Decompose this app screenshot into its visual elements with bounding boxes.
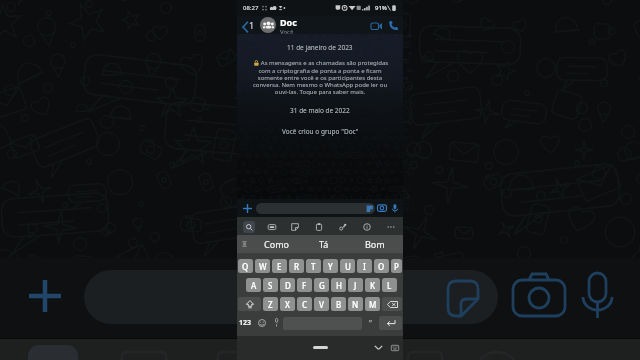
button[interactable]: Expand suggestions xyxy=(237,235,252,253)
staticText: Y xyxy=(328,261,333,272)
button[interactable]: S xyxy=(263,278,278,292)
button[interactable]: Voice message xyxy=(389,202,401,214)
staticText: 91% xyxy=(375,4,387,12)
button[interactable]: ” xyxy=(362,316,378,330)
button[interactable]: M xyxy=(365,297,380,311)
button[interactable]: Enter xyxy=(379,316,402,330)
staticText: Q xyxy=(242,261,249,272)
button[interactable]: Z xyxy=(263,297,278,311)
button[interactable]: B xyxy=(331,297,346,311)
button[interactable]: C xyxy=(297,297,312,311)
staticText: T xyxy=(311,261,316,272)
button[interactable]: X xyxy=(280,297,295,311)
button[interactable]: Backspace xyxy=(382,297,402,311)
button[interactable]: A xyxy=(246,278,261,292)
staticText: P xyxy=(394,261,399,272)
staticText: Bom xyxy=(365,238,385,250)
button[interactable]: Shift xyxy=(238,297,261,311)
staticText: 1 xyxy=(249,19,255,31)
staticText: C xyxy=(302,299,308,310)
staticText: Z xyxy=(268,299,273,310)
button[interactable]: D xyxy=(280,278,295,292)
button[interactable]: K xyxy=(365,278,380,292)
button[interactable]: Tá xyxy=(300,235,347,253)
button[interactable]: As mensagens e as chamadas são protegida… xyxy=(247,59,393,96)
button[interactable]: Back xyxy=(237,19,257,31)
staticText: E xyxy=(277,261,282,272)
staticText: Você xyxy=(280,28,294,34)
staticText: I xyxy=(363,261,366,272)
button[interactable]: G xyxy=(314,278,329,292)
button[interactable]: Tool 0 xyxy=(237,219,260,235)
button[interactable]: U xyxy=(340,259,355,273)
staticText: V xyxy=(319,299,324,310)
button[interactable]: E xyxy=(272,259,287,273)
staticText: F xyxy=(302,280,307,291)
staticText: W xyxy=(259,261,267,272)
staticText: ” xyxy=(369,318,372,329)
staticText: 11 de janeiro de 2023 xyxy=(287,43,353,52)
staticText: K xyxy=(370,280,376,291)
staticText: Como xyxy=(264,238,289,250)
button[interactable]: H xyxy=(331,278,346,292)
button[interactable]: F xyxy=(297,278,312,292)
button[interactable]: W xyxy=(255,259,270,273)
button[interactable]: O xyxy=(374,259,389,273)
staticText: A xyxy=(251,280,257,291)
button[interactable]: Tool 5 xyxy=(355,219,379,235)
staticText: D xyxy=(285,280,291,291)
button[interactable]: Emoji xyxy=(254,316,269,330)
staticText: R xyxy=(294,261,300,272)
staticText: 31 de maio de 2022 xyxy=(290,106,350,115)
staticText: Tá xyxy=(319,238,329,250)
staticText: H xyxy=(336,280,342,291)
button[interactable]: V xyxy=(314,297,329,311)
staticText: M xyxy=(369,299,377,310)
button[interactable]: Tool 3 xyxy=(307,219,331,235)
button[interactable]: Video call xyxy=(368,17,385,34)
button[interactable]: T xyxy=(306,259,321,273)
staticText: U xyxy=(345,261,351,272)
button[interactable]: Keyboard settings xyxy=(387,340,403,356)
button[interactable]: Tool 6 xyxy=(379,219,403,235)
button[interactable]: R xyxy=(289,259,304,273)
button[interactable]: Group photo xyxy=(260,17,276,33)
button[interactable]: Como xyxy=(252,235,300,253)
button[interactable]: Y xyxy=(323,259,338,273)
button[interactable]: J xyxy=(348,278,363,292)
button[interactable]: Call xyxy=(385,17,401,33)
staticText: J xyxy=(354,280,357,291)
button[interactable]: N xyxy=(348,297,363,311)
staticText: Você criou o grupo "Doc" xyxy=(282,127,359,136)
staticText: 08:27 xyxy=(243,4,259,12)
button[interactable]: Bom xyxy=(347,235,403,253)
button[interactable]: L xyxy=(382,278,397,292)
button[interactable]: I xyxy=(357,259,372,273)
button[interactable]: 123 xyxy=(237,316,254,330)
button[interactable]: Tool 1 xyxy=(260,219,283,235)
button[interactable]: Camera xyxy=(375,201,389,215)
button[interactable]: Voice input xyxy=(269,316,283,330)
staticText: O xyxy=(378,261,385,272)
staticText: X xyxy=(285,299,290,310)
staticText: G xyxy=(319,280,325,291)
button[interactable]: Tool 2 xyxy=(283,219,307,235)
button[interactable]: Hide keyboard xyxy=(370,339,387,356)
button[interactable]: P xyxy=(391,259,402,273)
staticText: N xyxy=(352,299,359,310)
staticText: L xyxy=(387,280,392,291)
button[interactable]: Tool 4 xyxy=(331,219,355,235)
staticText: B xyxy=(336,299,342,310)
button[interactable]: Attach xyxy=(239,200,255,216)
button[interactable] xyxy=(256,203,375,214)
staticText: S xyxy=(268,280,273,291)
button[interactable]: Q xyxy=(238,259,253,273)
staticText: 123 xyxy=(239,318,252,328)
staticText: Doc xyxy=(280,16,297,28)
